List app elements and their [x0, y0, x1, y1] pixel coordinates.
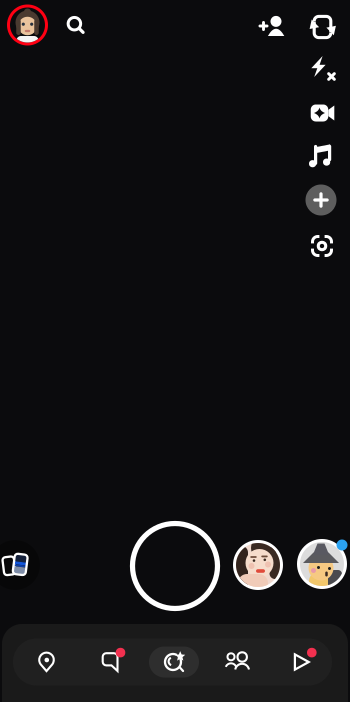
- button[interactable]: Profile: [3, 1, 51, 49]
- button[interactable]: Flip camera: [300, 5, 344, 49]
- button[interactable]: Scan: [300, 224, 344, 268]
- button[interactable]: Friend story: [231, 538, 285, 592]
- button[interactable]: Map: [17, 642, 77, 682]
- button[interactable]: Music: [299, 133, 343, 177]
- button[interactable]: Camera: [144, 642, 204, 682]
- button[interactable]: Create: [299, 178, 343, 222]
- button[interactable]: Flash off: [300, 46, 344, 90]
- button[interactable]: Stories: [208, 642, 268, 682]
- button[interactable]: Capture: [129, 520, 221, 612]
- button[interactable]: My story: [294, 536, 350, 592]
- button[interactable]: Memories: [0, 538, 42, 592]
- button[interactable]: Spotlight: [272, 642, 332, 682]
- button[interactable]: Search: [56, 3, 96, 47]
- button[interactable]: Chat: [80, 642, 140, 682]
- button[interactable]: Video: [299, 91, 343, 135]
- button[interactable]: Add friends: [250, 4, 292, 48]
